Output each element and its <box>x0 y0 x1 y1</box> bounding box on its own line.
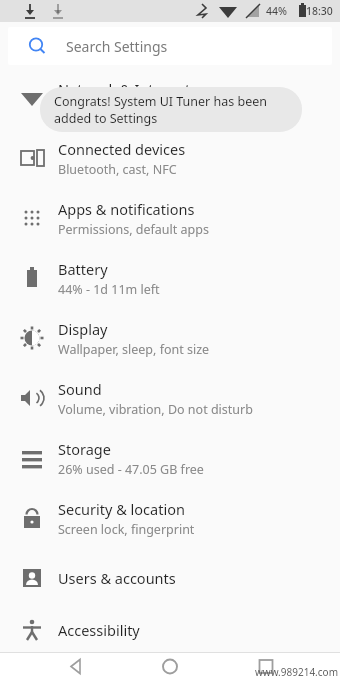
staticText: Connected devices <box>58 139 186 159</box>
staticText: Volume, vibration, Do not disturb <box>58 401 253 418</box>
button[interactable]: Display <box>0 308 340 368</box>
staticText: Apps & notifications <box>58 199 195 219</box>
button[interactable]: Search Settings <box>8 27 332 65</box>
staticText: www.989214.com <box>254 665 338 679</box>
button[interactable]: Network & Internet <box>0 68 340 128</box>
staticText: 26% used - 47.05 GB free <box>58 461 204 478</box>
staticText: Bluetooth, cast, NFC <box>58 161 177 178</box>
button[interactable]: Storage <box>0 428 340 488</box>
staticText: Wi-Fi, Mobile, Data Usage, Hotspot <box>58 101 262 118</box>
button[interactable]: Battery <box>0 248 340 308</box>
staticText: Network & Internet <box>58 79 191 99</box>
button[interactable]: Users & accounts <box>0 548 340 608</box>
button[interactable]: Home <box>152 653 188 680</box>
button[interactable]: Accessibility <box>0 608 340 652</box>
staticText: Search Settings <box>66 37 168 56</box>
button[interactable]: Security & location <box>0 488 340 548</box>
staticText: Permissions, default apps <box>58 221 209 238</box>
staticText: Security & location <box>58 499 185 519</box>
staticText: Screen lock, fingerprint <box>58 521 195 538</box>
staticText: Sound <box>58 379 102 399</box>
staticText: Accessibility <box>58 620 140 640</box>
staticText: Battery <box>58 259 108 279</box>
button[interactable]: Sound <box>0 368 340 428</box>
staticText: Congrats! System UI Tuner has been added… <box>54 93 267 126</box>
button[interactable]: Apps & notifications <box>0 188 340 248</box>
staticText: Storage <box>58 439 111 459</box>
staticText: Display <box>58 319 108 339</box>
staticText: Users & accounts <box>58 568 176 588</box>
button[interactable]: Back <box>58 653 94 680</box>
button[interactable]: Connected devices <box>0 128 340 188</box>
staticText: 44% - 1d 11m left <box>58 281 160 298</box>
staticText: Wallpaper, sleep, font size <box>58 341 210 358</box>
staticText: 18:30 <box>306 4 333 18</box>
staticText: 44% <box>266 4 287 18</box>
button[interactable]: Recent apps <box>248 653 284 680</box>
